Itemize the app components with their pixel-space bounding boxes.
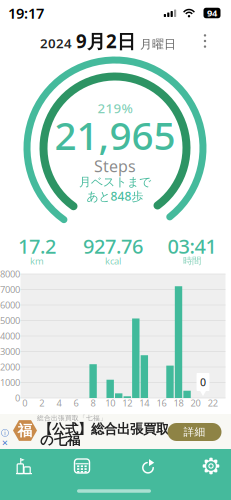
staticText: 1000 [0, 376, 20, 389]
staticText: 219% [97, 99, 132, 117]
staticText: ⓘ [1, 428, 9, 438]
staticText: 8000 [0, 268, 20, 280]
staticText: 月曜日 [140, 37, 176, 52]
staticText: 2000 [0, 361, 20, 373]
staticText: ✕ [1, 438, 8, 448]
staticText: 詳細 [183, 425, 205, 438]
staticText: 20 [191, 397, 201, 409]
staticText: 14 [139, 397, 149, 409]
staticText: 9月2日 [76, 29, 136, 53]
staticText: 12 [122, 397, 132, 409]
staticText: の七福 [40, 432, 80, 448]
staticText: 22 [208, 397, 218, 409]
staticText: 6 [73, 397, 78, 409]
staticText: 19:17 [8, 3, 44, 23]
button[interactable]: 詳細 [167, 423, 221, 441]
staticText: 21,965 [54, 109, 175, 161]
staticText: 4000 [0, 330, 20, 342]
staticText: 94 [207, 7, 217, 19]
button[interactable]: Stats [0, 443, 49, 489]
button[interactable]: Settings [186, 443, 231, 489]
staticText: 3000 [0, 345, 20, 358]
staticText: 927.76 [83, 233, 143, 259]
staticText: 月ベストまで [79, 175, 151, 189]
staticText: 10 [105, 397, 115, 409]
staticText: 03:41 [167, 233, 216, 259]
staticText: 時間 [183, 255, 201, 267]
staticText: Steps [94, 155, 136, 177]
button[interactable]: Calendar [57, 443, 107, 489]
staticText: 4 [56, 397, 61, 409]
staticText: 2 [39, 397, 44, 409]
staticText: 総合出張買取「七福」 [37, 414, 107, 422]
staticText: 18 [173, 397, 183, 409]
staticText: 0 [22, 397, 27, 409]
button[interactable]: More options [192, 26, 218, 56]
staticText: 0 [200, 375, 206, 389]
staticText: 5000 [0, 314, 20, 327]
staticText: 【公式】総合出張買取 [39, 421, 169, 437]
staticText: 17.2 [18, 233, 56, 259]
staticText: 0 [15, 392, 20, 404]
staticText: 16 [156, 397, 166, 409]
staticText: kcal [105, 255, 121, 267]
staticText: 2024 [40, 34, 72, 52]
staticText: 8 [91, 397, 96, 409]
button[interactable]: Share [123, 443, 173, 489]
staticText: km [30, 255, 44, 267]
staticText: 福 [17, 421, 32, 439]
staticText: 6000 [0, 299, 20, 311]
staticText: あと848歩 [86, 188, 143, 204]
staticText: 7000 [0, 283, 20, 296]
